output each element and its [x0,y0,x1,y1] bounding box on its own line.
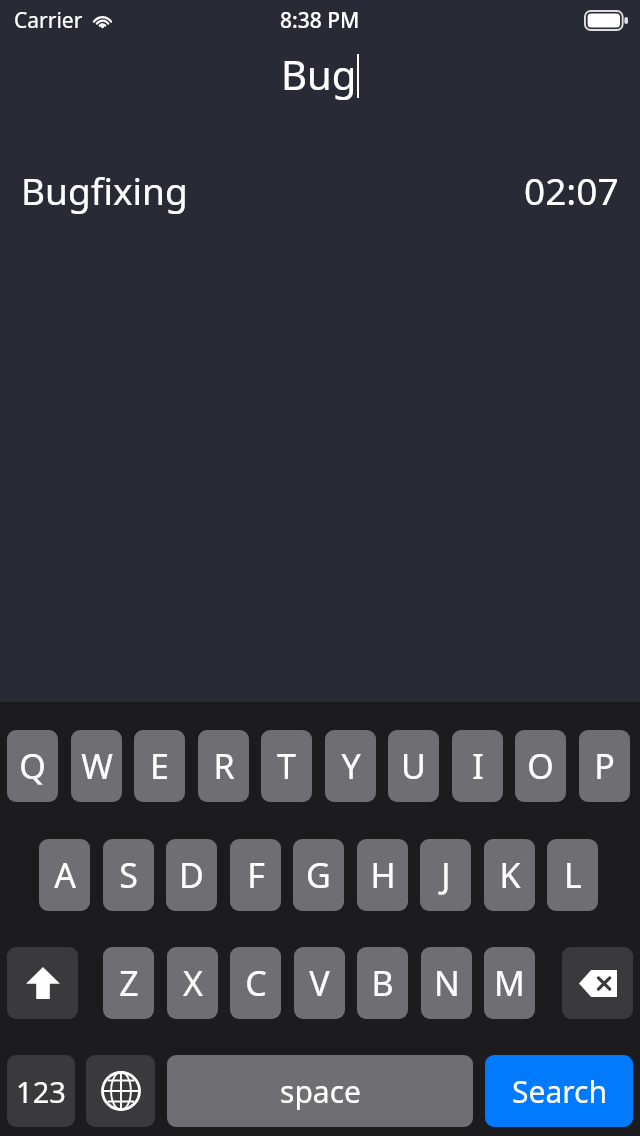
staticText: O [527,743,554,789]
staticText: D [179,852,204,898]
button[interactable]: Next keyboard [86,1055,155,1127]
button[interactable]: X [167,947,218,1019]
button[interactable]: Z [103,947,154,1019]
button[interactable]: S [103,839,154,911]
button[interactable]: N [421,947,472,1019]
button[interactable]: B [357,947,408,1019]
staticText: L [564,852,582,898]
button[interactable]: U [388,730,439,802]
button[interactable]: F [230,839,281,911]
staticText: V [309,960,330,1006]
button[interactable]: Backspace [562,947,633,1019]
staticText: Carrier [14,6,83,35]
staticText: K [499,852,521,898]
button[interactable]: Shift [7,947,78,1019]
staticText: A [54,852,76,898]
staticText: I [472,743,484,789]
staticText: T [277,743,296,789]
staticText: Y [341,743,361,789]
button[interactable]: V [294,947,345,1019]
staticText: P [594,743,615,789]
staticText: C [245,960,267,1006]
button[interactable]: O [515,730,566,802]
button[interactable]: H [357,839,408,911]
staticText: J [441,852,451,898]
staticText: 123 [16,1072,66,1111]
staticText: Bugfixing [21,165,188,215]
staticText: U [401,743,426,789]
button[interactable]: I [452,730,503,802]
button[interactable]: Bugfixing [0,160,640,220]
staticText: E [150,743,169,789]
staticText: Q [19,743,46,789]
staticText: B [371,960,394,1006]
staticText: space [280,1071,361,1112]
button[interactable]: R [198,730,249,802]
button[interactable]: C [230,947,281,1019]
button[interactable]: space [167,1055,473,1127]
button[interactable]: Search [485,1055,633,1127]
button[interactable]: W [71,730,122,802]
staticText: Search [512,1071,607,1112]
button[interactable]: Y [325,730,376,802]
button[interactable]: Bug [0,40,640,108]
staticText: Bug [281,47,357,101]
staticText: W [81,743,113,789]
button[interactable]: J [420,839,471,911]
button[interactable]: G [293,839,344,911]
staticText: M [494,960,525,1006]
button[interactable]: L [547,839,598,911]
staticText: H [370,852,396,898]
button[interactable]: P [579,730,630,802]
button[interactable]: E [134,730,185,802]
staticText: S [119,852,138,898]
button[interactable]: M [484,947,535,1019]
staticText: 02:07 [524,165,619,215]
staticText: F [247,852,265,898]
button[interactable]: A [39,839,90,911]
button[interactable]: 123 [7,1055,75,1127]
staticText: 8:38 PM [280,6,360,35]
button[interactable]: D [166,839,217,911]
staticText: N [434,960,460,1006]
button[interactable]: Q [7,730,58,802]
staticText: Z [119,960,139,1006]
staticText: G [306,852,331,898]
button[interactable]: T [261,730,312,802]
staticText: X [183,960,203,1006]
button[interactable]: K [484,839,535,911]
staticText: R [213,743,235,789]
